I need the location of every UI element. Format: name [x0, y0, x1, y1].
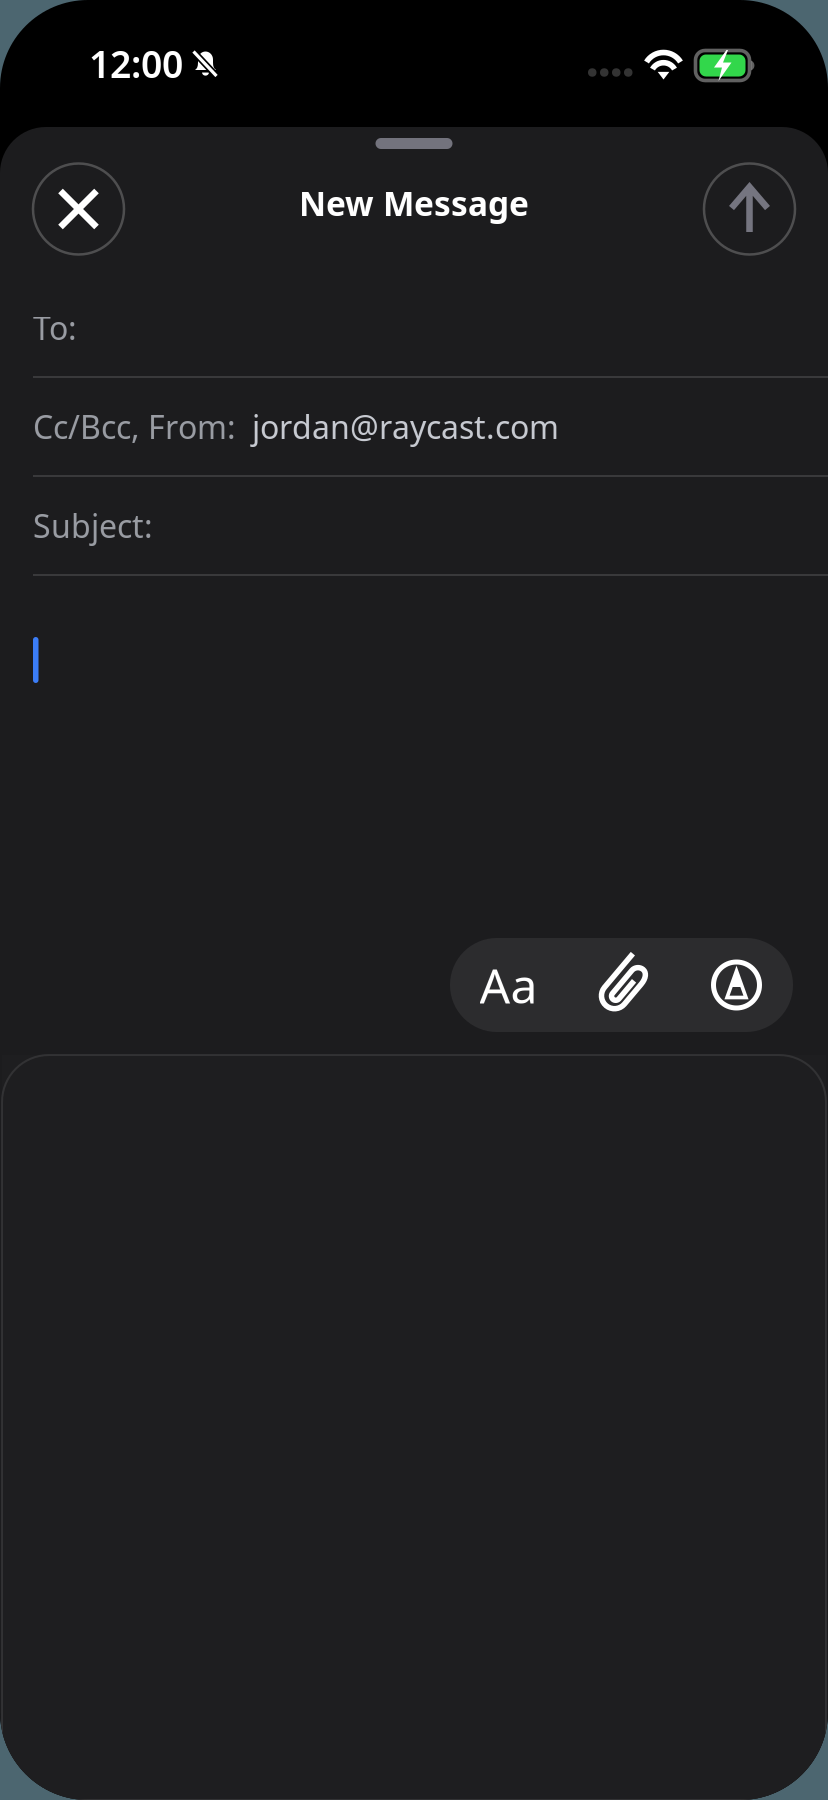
- button[interactable]: Text format: [450, 938, 567, 1032]
- staticText: Subject:: [33, 504, 153, 547]
- staticText: To:: [33, 306, 77, 349]
- button[interactable]: Markup: [680, 938, 793, 1032]
- staticText: Aa: [479, 953, 537, 1017]
- button[interactable]: Attach: [567, 938, 680, 1032]
- staticText: jordan@raycast.com: [252, 405, 559, 448]
- staticText: New Message: [299, 181, 529, 225]
- staticText: 12:00: [89, 39, 183, 88]
- button[interactable]: Send: [704, 163, 795, 254]
- staticText: Cc/Bcc, From:: [33, 405, 236, 448]
- button[interactable]: Close: [33, 163, 124, 254]
